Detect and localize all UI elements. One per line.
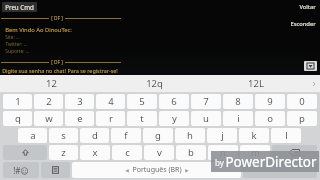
staticText: d <box>92 129 98 142</box>
button[interactable]: z <box>49 145 78 160</box>
staticText: Site: ... <box>5 34 20 41</box>
staticText: Português (BR) <box>132 165 182 175</box>
staticText: b <box>188 146 194 159</box>
staticText: a <box>30 129 36 142</box>
button[interactable]: Backspace <box>272 145 317 160</box>
button[interactable]: h <box>175 128 205 143</box>
staticText: u <box>203 112 209 125</box>
staticText: 0 <box>299 95 305 108</box>
staticText: ▶ <box>185 168 189 173</box>
staticText: g <box>155 129 161 142</box>
button[interactable]: 0 <box>287 94 317 109</box>
staticText: 3 <box>77 95 83 108</box>
button[interactable]: 6 <box>159 94 189 109</box>
button[interactable]: g <box>143 128 173 143</box>
button[interactable]: p <box>287 111 317 126</box>
button[interactable]: More suggestions <box>307 75 320 92</box>
staticText: l <box>285 129 288 142</box>
staticText: p <box>299 112 305 125</box>
button[interactable]: v <box>144 145 174 160</box>
staticText: n <box>220 146 226 159</box>
staticText: Bem Vindo Ao DinouTec: <box>5 26 72 34</box>
button[interactable]: 12 <box>0 75 103 92</box>
button[interactable]: 1 <box>3 94 32 109</box>
button[interactable]: 2 <box>34 94 63 109</box>
button[interactable]: b <box>176 145 206 160</box>
button[interactable]: i <box>223 111 253 126</box>
staticText: [ DF ] <box>51 59 63 66</box>
button[interactable]: x <box>80 145 110 160</box>
button[interactable]: Shift <box>3 145 47 160</box>
button[interactable]: 12L <box>205 75 307 92</box>
staticText: Esconder <box>290 20 316 28</box>
staticText: i <box>237 112 240 125</box>
staticText: 12 <box>46 77 57 90</box>
staticText: c <box>125 146 130 159</box>
staticText: 6 <box>171 95 177 108</box>
button[interactable]: m <box>240 145 270 160</box>
button[interactable]: o <box>255 111 285 126</box>
button[interactable]: Keyboard settings <box>41 162 70 178</box>
button[interactable]: 7 <box>191 94 221 109</box>
staticText: e <box>77 112 83 125</box>
staticText: 4 <box>108 95 114 108</box>
staticText: by <box>214 157 225 168</box>
staticText: k <box>251 129 257 142</box>
staticText: PowerDirector <box>225 153 317 171</box>
staticText: j <box>221 129 224 142</box>
staticText: ◀ <box>125 168 129 173</box>
staticText: Voltar <box>299 3 316 11</box>
staticText: Suporte: ... <box>5 48 30 55</box>
button[interactable]: j <box>207 128 237 143</box>
staticText: Digite sua senha no chat! Para se regist… <box>2 67 118 74</box>
staticText: o <box>267 112 273 125</box>
button[interactable]: u <box>191 111 221 126</box>
staticText: 9 <box>267 95 273 108</box>
staticText: t <box>140 112 144 125</box>
staticText: z <box>61 146 66 159</box>
button[interactable]: ◀ <box>72 162 241 178</box>
button[interactable]: 5 <box>127 94 157 109</box>
button[interactable]: 9 <box>255 94 285 109</box>
button[interactable]: Keyboard options <box>304 61 317 71</box>
staticText: x <box>92 146 98 159</box>
button[interactable]: k <box>239 128 269 143</box>
staticText: Twitter: ... <box>5 41 28 48</box>
staticText: w <box>45 112 53 125</box>
staticText: y <box>172 112 177 125</box>
staticText: r <box>109 112 113 125</box>
staticText: m <box>251 146 260 159</box>
button[interactable]: c <box>112 145 142 160</box>
button[interactable]: r <box>96 111 125 126</box>
button[interactable]: 12q <box>103 75 205 92</box>
button[interactable]: t <box>127 111 157 126</box>
button[interactable]: Enter <box>243 162 317 178</box>
staticText: 12q <box>146 77 163 90</box>
button[interactable]: 4 <box>96 94 125 109</box>
button[interactable]: s <box>49 128 78 143</box>
button[interactable]: Voltar <box>295 2 320 12</box>
button[interactable]: q <box>3 111 32 126</box>
staticText: 1 <box>15 95 21 108</box>
button[interactable]: a <box>18 128 47 143</box>
button[interactable]: d <box>80 128 109 143</box>
staticText: [ DF ] <box>51 15 63 22</box>
staticText: 12L <box>248 77 264 90</box>
button[interactable]: Esconder <box>286 19 320 29</box>
button[interactable]: Preu Cmd <box>2 2 37 12</box>
staticText: f <box>124 129 128 142</box>
button[interactable]: y <box>159 111 189 126</box>
button[interactable]: e <box>65 111 94 126</box>
staticText: 7 <box>203 95 209 108</box>
button[interactable]: w <box>34 111 63 126</box>
button[interactable]: 8 <box>223 94 253 109</box>
button[interactable]: 3 <box>65 94 94 109</box>
button[interactable]: Symbols <box>3 162 39 178</box>
staticText: 5 <box>139 95 145 108</box>
button[interactable]: f <box>111 128 141 143</box>
button[interactable]: n <box>208 145 238 160</box>
staticText: 8 <box>235 95 241 108</box>
staticText: s <box>61 129 66 142</box>
button[interactable]: l <box>271 128 301 143</box>
